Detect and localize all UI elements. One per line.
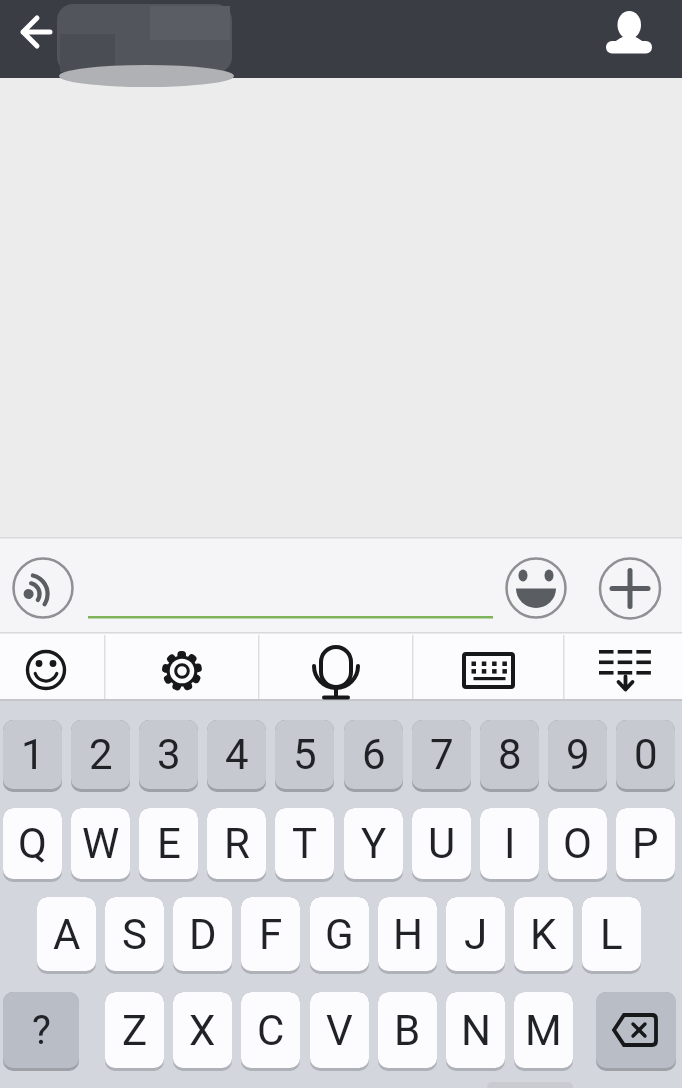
button[interactable]: R xyxy=(207,808,266,882)
button[interactable]: C xyxy=(241,992,300,1071)
button[interactable]: I xyxy=(480,808,539,882)
button[interactable]: Z xyxy=(105,992,164,1071)
staticText: 4 xyxy=(225,730,249,779)
staticText: 6 xyxy=(362,730,386,779)
staticText: U xyxy=(428,819,456,868)
button[interactable]: 5 xyxy=(275,720,334,792)
staticText: 9 xyxy=(566,730,590,779)
staticText: V xyxy=(326,1006,353,1055)
button[interactable]: K xyxy=(514,897,573,974)
button[interactable] xyxy=(598,8,660,68)
button[interactable] xyxy=(506,558,566,618)
button[interactable]: 3 xyxy=(139,720,198,792)
button[interactable] xyxy=(8,14,64,64)
staticText: 8 xyxy=(498,730,522,779)
button[interactable]: F xyxy=(241,897,300,974)
button[interactable]: 7 xyxy=(412,720,471,792)
button[interactable] xyxy=(596,992,676,1071)
staticText: G xyxy=(325,910,354,959)
staticText: 0 xyxy=(634,730,658,779)
button[interactable]: 1 xyxy=(3,720,62,792)
staticText: E xyxy=(157,819,181,868)
button[interactable]: W xyxy=(71,808,130,882)
button[interactable]: T xyxy=(275,808,334,882)
staticText: D xyxy=(189,910,217,959)
button[interactable] xyxy=(563,634,682,699)
staticText: Y xyxy=(361,819,387,868)
button[interactable] xyxy=(600,558,660,618)
button[interactable]: S xyxy=(105,897,164,974)
staticText: X xyxy=(189,1006,216,1055)
staticText: P xyxy=(632,819,659,868)
button[interactable]: O xyxy=(548,808,607,882)
staticText: I xyxy=(504,819,516,868)
staticText: 2 xyxy=(89,730,113,779)
button[interactable]: Q xyxy=(3,808,62,882)
button[interactable]: H xyxy=(378,897,437,974)
staticText: T xyxy=(292,819,318,868)
staticText: N xyxy=(461,1006,491,1055)
staticText: ? xyxy=(32,1007,51,1054)
button[interactable]: 6 xyxy=(344,720,403,792)
button[interactable]: N xyxy=(446,992,505,1071)
staticText: K xyxy=(530,910,557,959)
button[interactable] xyxy=(104,634,258,699)
button[interactable]: E xyxy=(139,808,198,882)
button[interactable]: 2 xyxy=(71,720,130,792)
staticText: R xyxy=(224,819,250,868)
staticText: H xyxy=(393,910,423,959)
staticText: Z xyxy=(122,1006,148,1055)
staticText: L xyxy=(600,910,623,959)
staticText: B xyxy=(394,1006,421,1055)
button[interactable]: 8 xyxy=(480,720,539,792)
staticText: J xyxy=(464,910,488,959)
button[interactable]: G xyxy=(310,897,369,974)
button[interactable]: B xyxy=(378,992,437,1071)
button[interactable]: J xyxy=(446,897,505,974)
staticText: A xyxy=(53,910,81,959)
button[interactable]: Y xyxy=(344,808,403,882)
staticText: C xyxy=(257,1006,285,1055)
staticText: W xyxy=(82,819,120,868)
button[interactable]: X xyxy=(173,992,232,1071)
staticText: 1 xyxy=(21,730,45,779)
staticText: 7 xyxy=(430,730,454,779)
button[interactable]: 4 xyxy=(207,720,266,792)
button[interactable] xyxy=(13,558,73,618)
button[interactable] xyxy=(412,634,563,699)
staticText: Q xyxy=(18,819,47,868)
button[interactable] xyxy=(0,634,104,699)
button[interactable]: P xyxy=(616,808,675,882)
staticText: 5 xyxy=(293,730,317,779)
button[interactable]: U xyxy=(412,808,471,882)
button[interactable]: M xyxy=(514,992,573,1071)
staticText: O xyxy=(563,819,592,868)
button[interactable]: ? xyxy=(3,992,79,1071)
button[interactable]: 9 xyxy=(548,720,607,792)
staticText: 3 xyxy=(157,730,181,779)
staticText: F xyxy=(259,910,283,959)
button[interactable]: L xyxy=(582,897,641,974)
button[interactable]: A xyxy=(37,897,96,974)
button[interactable]: V xyxy=(310,992,369,1071)
button[interactable] xyxy=(88,560,493,620)
button[interactable]: 0 xyxy=(616,720,675,792)
button[interactable]: D xyxy=(173,897,232,974)
staticText: M xyxy=(525,1006,562,1055)
button[interactable] xyxy=(258,634,412,699)
staticText: S xyxy=(122,910,147,959)
